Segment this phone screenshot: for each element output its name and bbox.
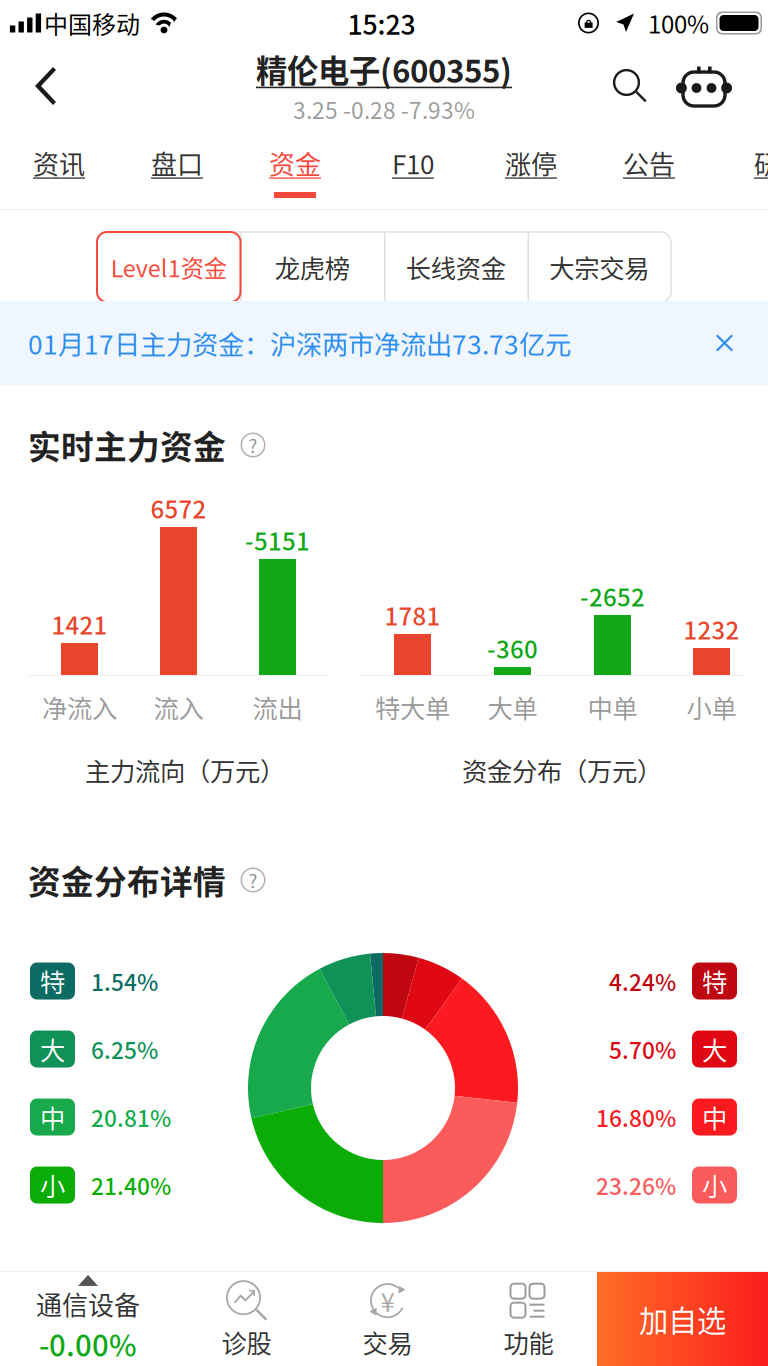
staticText: 实时主力资金 <box>28 421 226 469</box>
staticText: 大单 <box>487 689 537 725</box>
staticText: 15:23 <box>347 4 415 42</box>
staticText: 特大单 <box>375 689 450 725</box>
staticText: -5151 <box>245 523 310 557</box>
button[interactable]: 长线资金 <box>384 232 527 302</box>
staticText: 16.80% <box>596 1101 676 1133</box>
button[interactable]: 大宗交易 <box>527 232 671 302</box>
staticText: 资金分布详情 <box>28 856 226 904</box>
staticText: ? <box>248 431 257 458</box>
button[interactable]: 诊股 <box>176 1272 317 1366</box>
staticText: 交易 <box>362 1324 412 1360</box>
staticText: 大宗交易 <box>549 249 649 285</box>
staticText: 特 <box>702 963 727 999</box>
staticText: 中单 <box>587 689 637 725</box>
staticText: 20.81% <box>91 1101 171 1133</box>
button[interactable]: 通信设备 <box>0 1272 176 1366</box>
staticText: 23.26% <box>596 1169 676 1201</box>
staticText: 1421 <box>51 607 107 641</box>
button[interactable]: 返回 <box>14 46 78 126</box>
staticText: 中 <box>702 1099 727 1135</box>
staticText: 1781 <box>384 598 440 632</box>
button[interactable]: 龙虎榜 <box>240 232 384 302</box>
staticText: 6.25% <box>91 1033 158 1065</box>
button[interactable]: 加自选 <box>597 1272 768 1366</box>
staticText: 主力流向（万元） <box>85 752 285 788</box>
button[interactable]: Level1资金 <box>97 232 240 302</box>
button[interactable]: 公告 <box>590 126 708 210</box>
staticText: 1.54% <box>91 965 158 997</box>
button[interactable]: ¥ <box>317 1272 458 1366</box>
staticText: 01月17日主力资金：沪深两市净流出73.73亿元 <box>28 324 571 362</box>
staticText: 5.70% <box>609 1033 676 1065</box>
staticText: 1232 <box>683 612 739 646</box>
staticText: 诊股 <box>221 1324 271 1360</box>
staticText: 净流入 <box>42 689 117 725</box>
staticText: 4.24% <box>609 965 676 997</box>
staticText: 流入 <box>153 689 203 725</box>
staticText: 3.25 -0.28 -7.93% <box>293 93 475 126</box>
staticText: 涨停 <box>505 144 557 182</box>
staticText: Level1资金 <box>111 250 227 284</box>
staticText: 流出 <box>252 689 302 725</box>
staticText: 中国移动 <box>44 6 140 40</box>
staticText: 研 <box>754 144 768 182</box>
button[interactable]: 搜索 <box>593 46 667 126</box>
button[interactable]: 功能 <box>458 1272 599 1366</box>
staticText: -0.00% <box>39 1323 137 1365</box>
staticText: 龙虎榜 <box>275 249 350 285</box>
button[interactable]: 研 <box>708 126 768 210</box>
staticText: 资讯 <box>33 144 85 182</box>
staticText: 小 <box>702 1167 727 1203</box>
staticText: -360 <box>487 631 538 665</box>
staticText: 加自选 <box>639 1298 726 1340</box>
staticText: ? <box>248 866 257 893</box>
staticText: 长线资金 <box>406 249 506 285</box>
staticText: 特 <box>40 963 65 999</box>
staticText: 精伦电子(600355) <box>256 46 512 92</box>
staticText: 公告 <box>623 144 675 182</box>
staticText: 100% <box>648 6 709 40</box>
button[interactable]: 01月17日主力资金：沪深两市净流出73.73亿元 <box>0 301 768 385</box>
button[interactable]: F10 <box>354 126 472 210</box>
staticText: 盘口 <box>151 144 203 182</box>
staticText: 小单 <box>686 689 736 725</box>
staticText: F10 <box>392 144 434 182</box>
staticText: 小 <box>40 1167 65 1203</box>
staticText: ¥ <box>380 1282 394 1319</box>
button[interactable]: 盘口 <box>118 126 236 210</box>
button[interactable]: 涨停 <box>472 126 590 210</box>
staticText: 21.40% <box>91 1169 171 1201</box>
staticText: 通信设备 <box>36 1285 140 1322</box>
staticText: 大 <box>40 1031 65 1067</box>
staticText: 资金 <box>269 144 321 182</box>
staticText: 中 <box>40 1099 65 1135</box>
staticText: 资金分布（万元） <box>462 752 662 788</box>
button[interactable]: 资金 <box>236 126 354 210</box>
staticText: -2652 <box>580 579 645 613</box>
staticText: 6572 <box>150 491 206 525</box>
button[interactable]: 资讯 <box>0 126 118 210</box>
button[interactable]: 智能助手 <box>667 46 741 126</box>
staticText: 大 <box>702 1031 727 1067</box>
staticText: 功能 <box>503 1324 553 1360</box>
